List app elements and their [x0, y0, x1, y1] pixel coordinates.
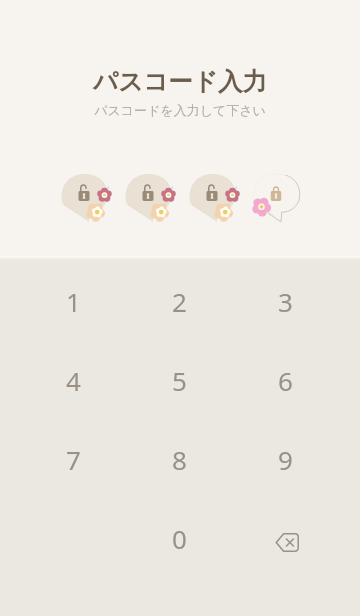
staticText: 2 — [172, 284, 187, 319]
button[interactable]: 7 — [20, 420, 126, 499]
button[interactable]: 9 — [232, 420, 338, 499]
staticText: 5 — [172, 363, 187, 398]
button[interactable]: Backspace — [232, 499, 338, 578]
button[interactable]: Passcode digit — [116, 168, 180, 224]
button[interactable]: 2 — [126, 262, 232, 341]
button[interactable]: 0 — [126, 499, 232, 578]
button[interactable]: 6 — [232, 341, 338, 420]
staticText: 8 — [172, 442, 187, 477]
staticText: 0 — [172, 521, 187, 556]
staticText: 1 — [66, 284, 81, 319]
staticText: 4 — [66, 363, 81, 398]
button[interactable]: 3 — [232, 262, 338, 341]
button[interactable]: 8 — [126, 420, 232, 499]
button[interactable]: Passcode digit — [52, 168, 116, 224]
button[interactable]: Passcode digit — [180, 168, 244, 224]
staticText: 6 — [278, 363, 293, 398]
staticText: 7 — [66, 442, 81, 477]
button[interactable]: 5 — [126, 341, 232, 420]
staticText: パスコードを入力して下さい — [94, 102, 266, 118]
button[interactable]: 1 — [20, 262, 126, 341]
staticText: 9 — [278, 442, 293, 477]
other: Backspace — [275, 533, 299, 552]
button[interactable]: Passcode digit — [244, 168, 308, 224]
button[interactable]: 4 — [20, 341, 126, 420]
staticText: 3 — [278, 284, 293, 319]
staticText: パスコード入力 — [93, 66, 267, 97]
